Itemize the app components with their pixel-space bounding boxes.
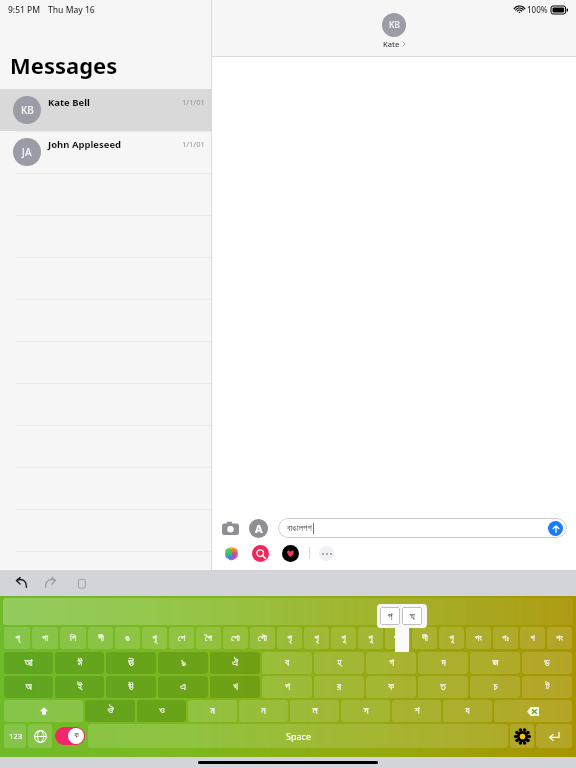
button[interactable]: ই <box>55 676 104 698</box>
staticText: শ <box>414 706 420 716</box>
button[interactable]: গৃ <box>304 627 329 649</box>
staticText: Kate <box>383 39 400 49</box>
button[interactable]: ম <box>188 700 237 722</box>
button[interactable]: উ <box>106 676 156 698</box>
button[interactable]: Settings <box>510 724 534 748</box>
staticText: John Appleseed <box>48 138 122 151</box>
button[interactable]: জ <box>470 652 520 674</box>
button[interactable]: Camera <box>221 519 240 538</box>
button[interactable]: Delete <box>494 700 572 722</box>
button[interactable]: গা <box>32 627 58 649</box>
button[interactable]: গ <box>520 627 545 649</box>
button[interactable]: স <box>341 700 390 722</box>
button[interactable]: হ <box>314 652 364 674</box>
button[interactable]: গৃ <box>277 627 302 649</box>
button[interactable]: গি <box>60 627 86 649</box>
button[interactable]: গে <box>169 627 194 649</box>
button[interactable]: গৌ <box>250 627 275 649</box>
button[interactable]: Photos <box>224 546 239 561</box>
button[interactable]: More <box>319 546 334 561</box>
button[interactable]: গী <box>88 627 113 649</box>
button[interactable]: Language <box>55 727 85 745</box>
staticText: ঊ <box>128 658 134 668</box>
button[interactable]: গূ <box>142 627 167 649</box>
button[interactable]: এ <box>158 676 208 698</box>
button[interactable]: ঊ <box>106 652 156 674</box>
staticText: জ <box>492 658 499 668</box>
staticText: ত <box>440 682 446 692</box>
button[interactable]: ঘ <box>402 607 422 625</box>
button[interactable]: গং <box>547 627 572 649</box>
button[interactable]: Undo <box>12 574 30 592</box>
button[interactable]: Kate <box>382 13 406 37</box>
button[interactable]: Images <box>252 545 269 562</box>
staticText: ঘ <box>410 611 415 622</box>
button[interactable]: ন <box>239 700 288 722</box>
button[interactable]: গ <box>380 607 400 625</box>
button[interactable]: গৎ <box>385 627 410 649</box>
button[interactable]: খ <box>210 676 260 698</box>
staticText: গী <box>98 634 104 643</box>
button[interactable]: গং <box>466 627 491 649</box>
button[interactable]: Shift <box>4 700 83 722</box>
button[interactable]: বাঙালপগ <box>278 518 567 538</box>
staticText: ন <box>261 706 266 716</box>
button[interactable]: গু <box>358 627 383 649</box>
button[interactable]: গু <box>331 627 356 649</box>
button[interactable]: ড <box>522 652 572 674</box>
button[interactable]: ট <box>522 676 572 698</box>
button[interactable]: ঙ <box>115 627 140 649</box>
button[interactable]: শ <box>392 700 441 722</box>
button[interactable]: ঐ <box>210 652 260 674</box>
button[interactable]: আ <box>4 652 53 674</box>
button[interactable]: র <box>314 676 364 698</box>
staticText: 123 <box>9 731 22 741</box>
button[interactable]: গো <box>223 627 248 649</box>
staticText: Messages <box>10 50 118 80</box>
button[interactable]: গ্ <box>4 627 30 649</box>
button[interactable]: গঃ <box>493 627 518 649</box>
button[interactable]: JA <box>0 131 211 173</box>
button[interactable]: Paste <box>72 574 90 592</box>
button[interactable]: ত <box>418 676 468 698</box>
button[interactable]: Send <box>548 521 563 536</box>
button[interactable]: ও <box>137 700 186 722</box>
button[interactable]: গী <box>412 627 437 649</box>
button[interactable]: প <box>262 676 312 698</box>
button[interactable]: গু <box>439 627 464 649</box>
button[interactable]: ঌ <box>158 652 208 674</box>
button[interactable]: Return <box>536 724 572 748</box>
button[interactable]: ক <box>366 676 416 698</box>
button[interactable] <box>3 598 573 625</box>
button[interactable]: গ <box>366 652 416 674</box>
button[interactable]: Next keyboard <box>28 724 52 748</box>
button[interactable]: KB <box>0 89 211 131</box>
button[interactable]: য <box>443 700 492 722</box>
button[interactable]: ঈ <box>55 652 104 674</box>
button[interactable]: গৈ <box>196 627 221 649</box>
button[interactable]: App Store <box>249 519 268 538</box>
button[interactable]: অ <box>4 676 53 698</box>
button[interactable]: Digital Touch <box>282 545 299 562</box>
button[interactable]: চ <box>470 676 520 698</box>
button[interactable]: ল <box>290 700 339 722</box>
button[interactable]: দ <box>418 652 468 674</box>
button[interactable]: ঔ <box>85 700 135 722</box>
staticText: গং <box>556 634 563 643</box>
button[interactable]: ব <box>262 652 312 674</box>
staticText: প <box>285 682 290 692</box>
button[interactable]: Redo <box>42 574 60 592</box>
staticText: ঈ <box>77 658 83 668</box>
button[interactable]: Space <box>88 724 508 748</box>
button[interactable]: 123 <box>4 724 26 748</box>
